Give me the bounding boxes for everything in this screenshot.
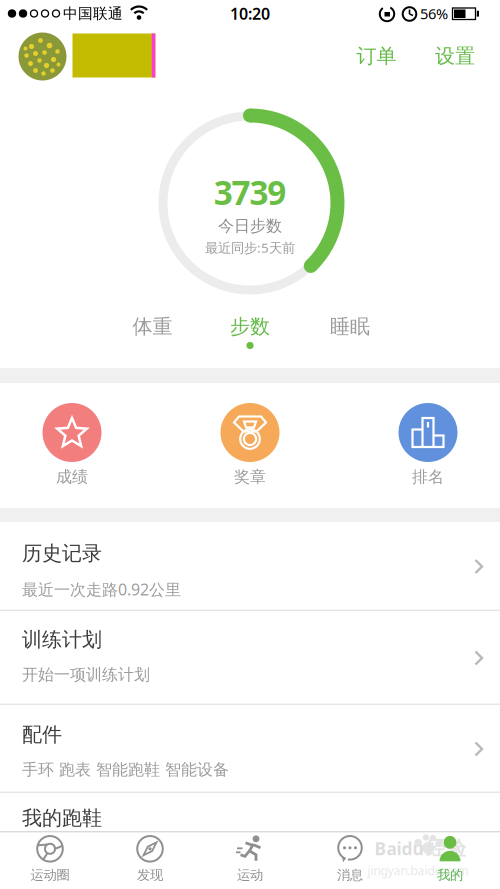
button[interactable]: 我的: [400, 831, 500, 887]
button[interactable]: 睡眠: [300, 308, 400, 344]
button[interactable]: 消息: [300, 831, 400, 887]
staticText: 运动: [237, 867, 263, 883]
button[interactable]: 订单: [341, 34, 411, 78]
staticText: 成绩: [56, 467, 88, 487]
button[interactable]: 运动: [200, 831, 300, 887]
staticText: 我的跑鞋: [22, 806, 102, 830]
button[interactable]: [42, 403, 101, 462]
staticText: 运动圈: [30, 867, 69, 883]
staticText: 奖章: [234, 467, 266, 487]
staticText: 训练计划: [22, 627, 102, 652]
staticText: 经验: [426, 836, 466, 861]
staticText: Baidu: [374, 837, 423, 860]
button[interactable]: 发现: [100, 831, 200, 887]
staticText: 步数: [230, 314, 270, 339]
staticText: 3739: [214, 170, 286, 214]
button[interactable]: [398, 403, 457, 462]
staticText: 今日步数: [218, 216, 282, 236]
button[interactable]: 体重: [102, 308, 202, 344]
button[interactable]: 历史记录: [0, 522, 500, 611]
button[interactable]: 运动圈: [0, 831, 100, 887]
staticText: 设置: [435, 44, 475, 68]
staticText: 我的: [437, 867, 463, 883]
staticText: 排名: [412, 467, 444, 487]
staticText: 订单: [356, 44, 396, 68]
staticText: 配件: [22, 722, 62, 747]
staticText: 体重: [132, 314, 172, 339]
button[interactable]: 步数: [200, 308, 300, 344]
staticText: jingyan.baidu.com: [367, 862, 468, 878]
staticText: 历史记录: [22, 541, 102, 566]
button[interactable]: Profile photo: [18, 32, 66, 80]
staticText: 中国联通: [63, 4, 123, 22]
staticText: 手环 跑表 智能跑鞋 智能设备: [22, 760, 229, 780]
staticText: 10:20: [230, 3, 270, 24]
staticText: 开始一项训练计划: [22, 665, 150, 685]
button[interactable]: 训练计划: [0, 611, 500, 705]
button[interactable]: 设置: [420, 34, 490, 78]
button[interactable]: [220, 403, 279, 462]
staticText: 发现: [137, 867, 163, 883]
staticText: 消息: [337, 867, 363, 883]
staticText: 睡眠: [330, 314, 370, 339]
staticText: 最近一次走路0.92公里: [22, 579, 181, 600]
staticText: 56%: [420, 4, 448, 23]
button[interactable]: 配件: [0, 705, 500, 793]
staticText: 最近同步:5天前: [205, 239, 295, 256]
